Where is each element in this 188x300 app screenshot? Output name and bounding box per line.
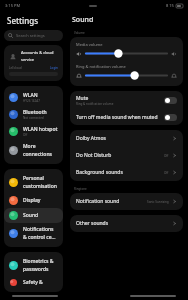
- button[interactable]: Off: [164, 97, 177, 104]
- button[interactable]: [76, 70, 177, 81]
- staticText: Accounts & cloud service: [21, 50, 58, 63]
- staticText: HY26 142A7: [23, 99, 40, 103]
- staticText: Sound: [72, 15, 94, 25]
- staticText: Ring & notification volume: [76, 64, 126, 69]
- button[interactable]: Personal customisation: [4, 172, 63, 193]
- button[interactable]: Turn off media sound when muted: [70, 110, 183, 125]
- button[interactable]: Do Not Disturb: [70, 147, 183, 164]
- staticText: Off: [164, 171, 169, 175]
- staticText: 3:15 PM: [5, 3, 21, 8]
- staticText: Volume: [74, 31, 85, 35]
- staticText: Biometrics & passwords: [23, 258, 58, 273]
- staticText: Turn off media sound when muted: [76, 114, 158, 121]
- staticText: 8 15: [166, 3, 174, 8]
- staticText: Sonic Sunrising: [147, 200, 169, 204]
- staticText: Notifications & control center: [23, 226, 58, 241]
- button[interactable]: Notification sound: [70, 193, 183, 210]
- staticText: Personal customisation: [23, 175, 58, 190]
- staticText: WLAN hotspot: [23, 126, 58, 133]
- button[interactable]: Notifications & control center: [4, 223, 63, 244]
- button[interactable]: WLAN hotspot: [4, 123, 63, 140]
- staticText: Ringtone: [74, 187, 87, 191]
- staticText: Media volume: [76, 42, 103, 47]
- staticText: More connections: [23, 143, 58, 158]
- staticText: Display: [23, 197, 41, 204]
- staticText: Sound: [23, 212, 39, 219]
- button[interactable]: WLAN: [4, 89, 63, 106]
- button[interactable]: Other sounds: [70, 215, 183, 232]
- button[interactable]: Accounts & cloud service: [4, 45, 63, 81]
- button[interactable]: Display: [4, 193, 63, 208]
- staticText: Login: [50, 66, 58, 70]
- button[interactable]: Safety & emergency: [4, 276, 63, 289]
- button[interactable]: Search settings: [4, 30, 63, 41]
- staticText: Search settings: [16, 33, 45, 38]
- staticText: Ring & notification volume: [76, 102, 114, 106]
- staticText: Mute: [76, 95, 89, 102]
- staticText: WLAN: [23, 92, 38, 99]
- button[interactable]: [76, 48, 177, 59]
- button[interactable]: Biometrics & passwords: [4, 255, 63, 276]
- staticText: Off: [23, 133, 28, 137]
- staticText: Safety & emergency: [23, 279, 58, 286]
- button[interactable]: Dolby Atmos: [70, 130, 183, 147]
- staticText: Notification sound: [76, 198, 147, 205]
- staticText: Background sounds: [76, 169, 164, 176]
- button[interactable]: More connections: [4, 140, 63, 161]
- staticText: LeEcloud: [9, 66, 50, 70]
- staticText: Settings: [7, 15, 39, 26]
- staticText: Not connected: [23, 116, 44, 120]
- staticText: Bluetooth: [23, 109, 47, 116]
- staticText: Dolby Atmos: [76, 135, 172, 142]
- staticText: Do Not Disturb: [76, 152, 164, 159]
- button[interactable]: Bluetooth: [4, 106, 63, 123]
- staticText: Other sounds: [76, 220, 172, 227]
- button[interactable]: Mute: [70, 91, 183, 110]
- button[interactable]: Sound: [4, 208, 63, 223]
- button[interactable]: Background sounds: [70, 164, 183, 181]
- staticText: Off: [164, 154, 169, 158]
- button[interactable]: Off: [164, 114, 177, 121]
